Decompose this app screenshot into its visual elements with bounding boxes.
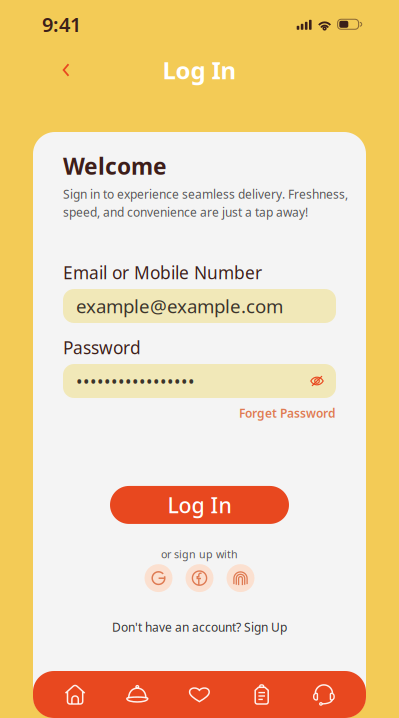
staticText: Email or Mobile Number: [63, 261, 262, 284]
button[interactable]: Don't have an account? Sign Up: [112, 615, 287, 639]
button[interactable]: Sign up with Touch ID: [226, 564, 254, 592]
button[interactable]: Menu: [106, 671, 168, 718]
staticText: •••••••••••••••••: [76, 369, 195, 392]
button[interactable]: Sign up with Facebook: [185, 564, 213, 592]
button[interactable]: Sign up with Google: [144, 564, 172, 592]
staticText: example@example.com: [76, 294, 283, 318]
button[interactable]: Favourites: [168, 671, 231, 718]
staticText: Welcome: [63, 151, 167, 181]
staticText: Log In: [167, 491, 231, 519]
button[interactable]: Back: [50, 54, 82, 86]
button[interactable]: Support: [293, 671, 355, 718]
staticText: Sign in to experience seamless delivery.…: [63, 186, 348, 202]
button[interactable]: Home: [44, 671, 106, 718]
staticText: Don't have an account? Sign Up: [112, 619, 287, 635]
button[interactable]: Orders: [231, 671, 293, 718]
staticText: Password: [63, 336, 141, 359]
staticText: Log In: [162, 54, 236, 86]
button[interactable]: Show password: [310, 374, 324, 387]
staticText: speed, and convenience are just a tap aw…: [63, 204, 308, 220]
staticText: or sign up with: [161, 547, 238, 561]
staticText: Forget Password: [239, 405, 336, 421]
button[interactable]: Log In: [110, 486, 289, 524]
button[interactable]: Forget Password: [239, 401, 336, 425]
staticText: 9:41: [42, 11, 81, 38]
